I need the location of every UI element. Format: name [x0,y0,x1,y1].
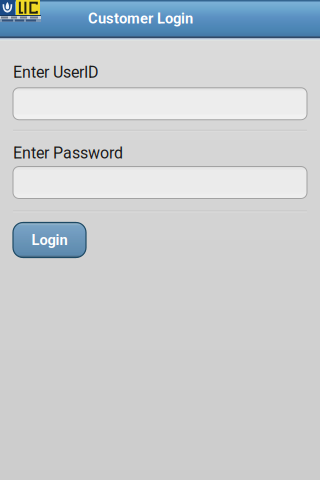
staticText: Enter UserID [13,63,99,82]
staticText: Enter Password [13,144,123,163]
staticText: Customer Login [88,10,193,27]
button[interactable]: Login [13,222,86,257]
staticText: Login [31,231,67,249]
